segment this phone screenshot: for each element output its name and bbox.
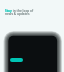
- button[interactable]: [10, 58, 23, 62]
- staticText: in the loop of: [12, 9, 34, 13]
- staticText: news & updates: [5, 12, 30, 16]
- staticText: Stay: [5, 9, 12, 13]
